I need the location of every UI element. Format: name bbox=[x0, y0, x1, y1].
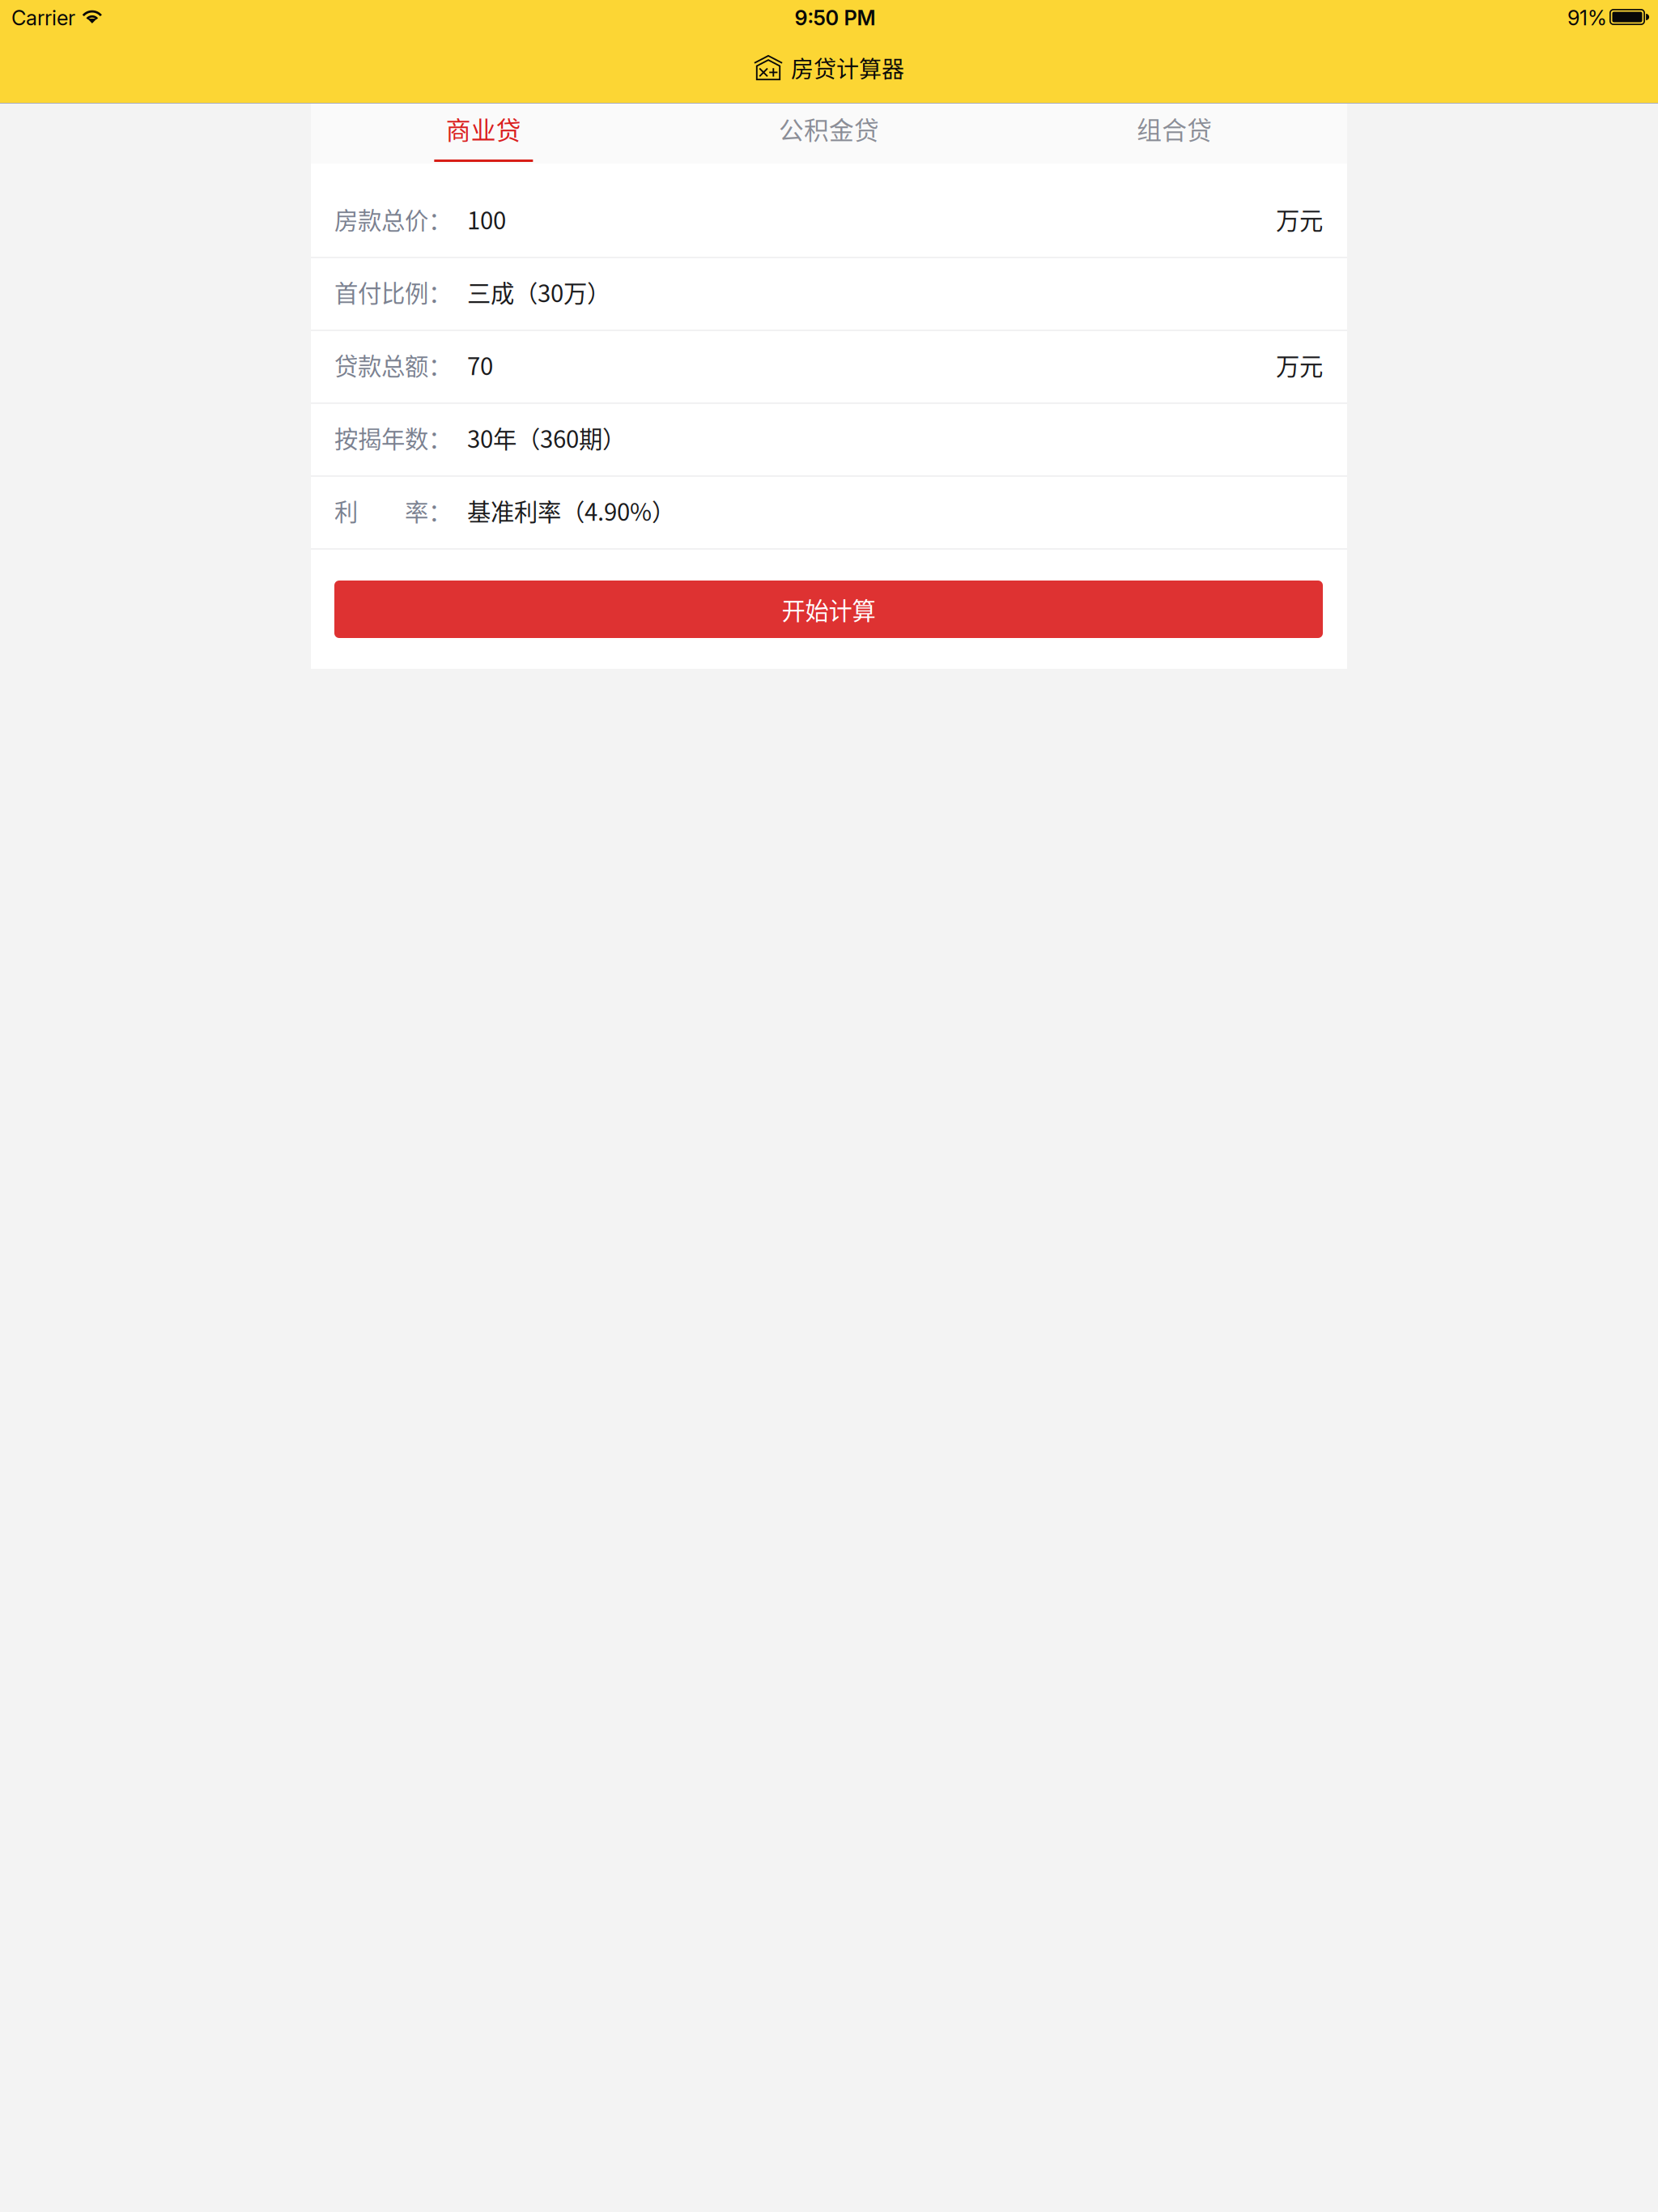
staticText: 91% bbox=[1567, 5, 1607, 30]
staticText: 100 bbox=[467, 202, 506, 236]
button[interactable]: 开始计算 bbox=[334, 581, 1323, 638]
staticText: 万元 bbox=[1276, 348, 1323, 382]
staticText: 9:50 PM bbox=[795, 5, 876, 30]
button[interactable]: 组合贷 bbox=[1002, 104, 1347, 164]
staticText: 按揭年数： bbox=[334, 420, 452, 455]
staticText: 30年（360期） bbox=[467, 420, 626, 455]
staticText: 利 率： bbox=[334, 493, 452, 528]
staticText: Carrier bbox=[11, 5, 75, 30]
staticText: 组合贷 bbox=[1137, 111, 1212, 147]
button[interactable]: 首付比例： bbox=[311, 258, 1347, 330]
button[interactable]: 商业贷 bbox=[311, 104, 656, 164]
staticText: 基准利率（4.90%） bbox=[467, 493, 675, 528]
button[interactable]: 利 率： bbox=[311, 477, 1347, 548]
staticText: 房款总价： bbox=[334, 202, 452, 236]
staticText: 公积金贷 bbox=[779, 111, 879, 147]
button[interactable]: 贷款总额： bbox=[311, 331, 1347, 402]
staticText: 首付比例： bbox=[334, 275, 452, 309]
button[interactable]: 按揭年数： bbox=[311, 404, 1347, 475]
staticText: 房贷计算器 bbox=[791, 51, 904, 84]
staticText: 贷款总额： bbox=[334, 348, 452, 382]
button[interactable]: 房款总价： bbox=[311, 185, 1347, 257]
button[interactable]: 公积金贷 bbox=[656, 104, 1002, 164]
staticText: 万元 bbox=[1276, 202, 1323, 236]
staticText: 70 bbox=[467, 348, 493, 382]
staticText: 商业贷 bbox=[446, 111, 521, 147]
staticText: 开始计算 bbox=[782, 592, 876, 627]
staticText: 三成（30万） bbox=[467, 275, 610, 309]
